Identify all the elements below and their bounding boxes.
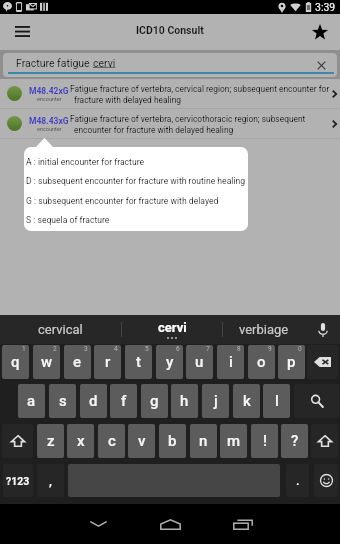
button[interactable]: , xyxy=(37,464,64,497)
staticText: 3 xyxy=(84,345,88,353)
button[interactable]: A : initial encounter for fracture xyxy=(24,152,248,171)
staticText: w xyxy=(41,353,53,371)
button[interactable]: d xyxy=(80,384,107,418)
staticText: t xyxy=(136,353,141,371)
button[interactable]: o xyxy=(248,345,275,379)
button[interactable]: cervi xyxy=(122,315,222,344)
button[interactable]: j xyxy=(202,384,229,418)
staticText: y xyxy=(166,353,174,371)
button[interactable]: Home xyxy=(146,504,194,544)
button[interactable]: Emoji xyxy=(314,464,338,497)
button[interactable]: G : subsequent encounter for fracture wi… xyxy=(24,191,248,210)
button[interactable]: n xyxy=(190,424,217,458)
staticText: cervi xyxy=(158,320,187,335)
button[interactable]: S : sequela of fracture xyxy=(24,210,248,229)
button[interactable]: Search xyxy=(294,384,339,418)
staticText: n xyxy=(199,432,208,450)
staticText: 9 xyxy=(268,345,272,353)
button[interactable]: f xyxy=(110,384,137,418)
button[interactable]: ! xyxy=(251,424,278,458)
button[interactable]: . xyxy=(286,464,309,497)
staticText: Fatigue fracture of vertebra, cervical r… xyxy=(70,84,330,94)
staticText: ? xyxy=(291,432,299,450)
button[interactable]: M48.42xG xyxy=(0,79,340,109)
button[interactable]: Fracture fatigue xyxy=(3,53,337,77)
button[interactable]: i xyxy=(217,345,244,379)
button[interactable]: k xyxy=(233,384,260,418)
button[interactable]: h xyxy=(171,384,198,418)
button[interactable]: e xyxy=(64,345,91,379)
button[interactable]: q xyxy=(2,345,29,379)
button[interactable]: r xyxy=(94,345,121,379)
button[interactable]: u xyxy=(186,345,213,379)
staticText: verbiage xyxy=(239,322,289,337)
staticText: z xyxy=(47,432,55,450)
staticText: 7 xyxy=(206,345,210,353)
button[interactable]: x xyxy=(67,424,94,458)
button[interactable]: Menu xyxy=(0,14,44,48)
staticText: o xyxy=(257,353,266,371)
staticText: fracture with delayed healing xyxy=(74,95,181,105)
staticText: S : sequela of fracture xyxy=(26,215,110,225)
staticText: r xyxy=(105,353,111,371)
staticText: D : subsequent encounter for fracture wi… xyxy=(26,176,246,186)
button[interactable]: Backspace xyxy=(307,345,338,379)
button[interactable]: a xyxy=(18,384,45,418)
button[interactable]: b xyxy=(159,424,186,458)
staticText: 3:39 xyxy=(315,1,336,13)
staticText: Fracture fatigue xyxy=(16,57,93,69)
staticText: i xyxy=(229,353,233,371)
button[interactable]: t xyxy=(125,345,152,379)
button[interactable]: Voice input xyxy=(305,315,340,344)
button[interactable]: ?123 xyxy=(3,464,33,497)
staticText: x xyxy=(77,432,85,450)
staticText: 5 xyxy=(145,345,149,353)
staticText: cervi xyxy=(93,57,116,69)
button[interactable]: M48.43xG xyxy=(0,109,340,139)
button[interactable]: cervical xyxy=(0,315,121,344)
staticText: encounter xyxy=(37,126,62,132)
staticText: encounter xyxy=(37,96,62,102)
button[interactable]: l xyxy=(263,384,290,418)
staticText: b xyxy=(168,432,177,450)
staticText: M48.42xG xyxy=(29,86,69,96)
staticText: v xyxy=(138,432,146,450)
button[interactable]: Recent apps xyxy=(219,504,267,544)
button[interactable]: ? xyxy=(281,424,308,458)
button[interactable]: s xyxy=(49,384,76,418)
button[interactable]: c xyxy=(98,424,125,458)
button[interactable]: v xyxy=(128,424,155,458)
staticText: g xyxy=(150,392,159,410)
button[interactable]: Clear text xyxy=(316,60,327,71)
staticText: d xyxy=(89,392,98,410)
staticText: 0 xyxy=(298,345,302,353)
staticText: . xyxy=(296,473,300,488)
staticText: ICD10 Consult xyxy=(136,24,204,36)
button[interactable]: m xyxy=(220,424,247,458)
button[interactable]: y xyxy=(156,345,183,379)
button[interactable]: g xyxy=(141,384,168,418)
staticText: 1 xyxy=(22,345,26,353)
staticText: encounter for fracture with delayed heal… xyxy=(74,125,234,135)
button[interactable]: Shift xyxy=(2,424,33,458)
staticText: Fatigue fracture of vertebra, cervicotho… xyxy=(70,114,306,124)
staticText: 4 xyxy=(114,345,118,353)
staticText: , xyxy=(49,473,52,488)
button[interactable]: w xyxy=(33,345,60,379)
button[interactable]: Shift xyxy=(311,424,338,458)
staticText: m xyxy=(227,432,241,450)
button[interactable]: z xyxy=(37,424,64,458)
staticText: A : initial encounter for fracture xyxy=(26,157,145,167)
staticText: s xyxy=(59,392,67,410)
button[interactable]: Favorite xyxy=(300,14,340,48)
staticText: M48.43xG xyxy=(29,116,69,126)
button[interactable]: p xyxy=(278,345,305,379)
button[interactable]: D : subsequent encounter for fracture wi… xyxy=(24,171,248,190)
staticText: f xyxy=(121,392,127,410)
staticText: 6 xyxy=(176,345,180,353)
staticText: h xyxy=(180,392,189,410)
button[interactable]: verbiage xyxy=(223,315,305,344)
staticText: ?123 xyxy=(6,475,30,487)
button[interactable]: Back xyxy=(74,504,122,544)
